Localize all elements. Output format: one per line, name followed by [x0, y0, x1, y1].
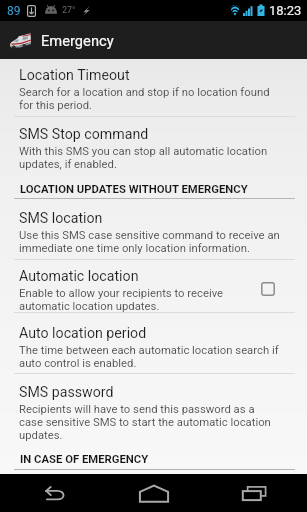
button[interactable]: SMS password — [0, 374, 307, 446]
button[interactable]: Auto location period — [0, 313, 307, 374]
staticText: The time between each automatic location… — [19, 344, 280, 370]
button[interactable]: SMS Stop command — [0, 117, 307, 175]
staticText: Use this SMS case sensitive command to r… — [19, 229, 280, 255]
button[interactable]: Back — [0, 474, 103, 512]
button[interactable]: Home — [103, 474, 205, 512]
button[interactable]: SMS location — [0, 199, 307, 260]
staticText: Automatic location — [19, 268, 139, 285]
staticText: 27° — [62, 5, 76, 16]
staticText: Search for a location and stop if no loc… — [19, 86, 280, 112]
staticText: 89 — [7, 4, 21, 18]
staticText: IN CASE OF EMERGENCY — [20, 453, 149, 466]
staticText: Location Timeout — [19, 67, 130, 84]
staticText: Enable to allow your recipients to recei… — [19, 287, 275, 313]
staticText: SMS location — [19, 210, 103, 227]
staticText: Auto location period — [19, 325, 147, 342]
staticText: Emergency — [41, 32, 114, 49]
button[interactable]: Automatic location — [0, 260, 307, 313]
staticText: Recipients will have to send this passwo… — [19, 403, 280, 442]
staticText: SMS Stop command — [19, 126, 149, 143]
staticText: SMS password — [19, 384, 114, 401]
other: Ambulance — [9, 31, 31, 49]
staticText: 18:23 — [269, 3, 302, 18]
button[interactable]: Location Timeout — [0, 59, 307, 117]
staticText: With this SMS you can stop all automatic… — [19, 145, 280, 171]
button[interactable]: Recents — [205, 474, 307, 512]
staticText: LOCATION UPDATES WITHOUT EMERGENCY — [20, 183, 248, 196]
